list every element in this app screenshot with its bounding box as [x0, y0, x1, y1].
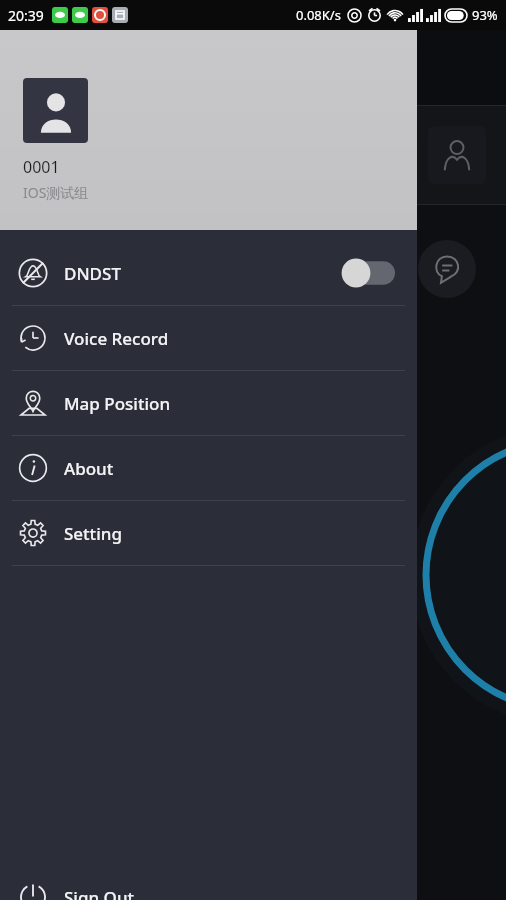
staticText: IOS测试组 — [23, 183, 89, 202]
staticText: Sign Out — [64, 886, 135, 900]
staticText: Map Position — [64, 392, 171, 415]
staticText: Voice Record — [64, 327, 169, 350]
button[interactable]: Map Position — [0, 371, 417, 435]
button[interactable]: Setting — [0, 501, 417, 565]
staticText: Setting — [64, 522, 122, 545]
staticText: DNDST — [64, 262, 121, 285]
button[interactable]: About — [0, 436, 417, 500]
button[interactable]: Messages — [418, 240, 476, 298]
staticText: 0001 — [23, 156, 60, 178]
staticText: About — [64, 457, 114, 480]
staticText: 0.08K/s — [296, 6, 341, 24]
staticText: 93% — [472, 6, 498, 24]
staticText: 20:39 — [8, 6, 44, 25]
button[interactable]: 0001 — [0, 30, 417, 230]
button[interactable]: DNDST — [0, 241, 417, 305]
button[interactable]: Do not disturb toggle — [341, 258, 395, 288]
button[interactable]: Sign Out — [0, 866, 417, 900]
button[interactable]: Voice Record — [0, 306, 417, 370]
